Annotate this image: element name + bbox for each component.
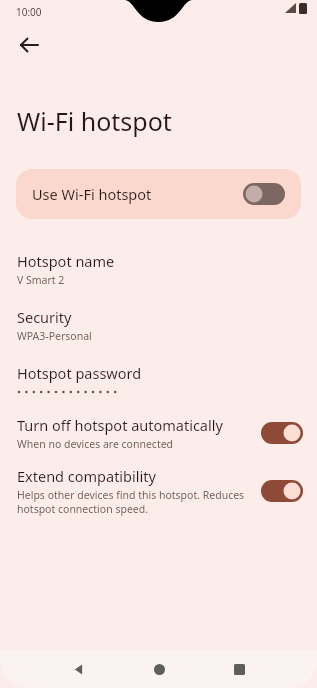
staticText: Use Wi-Fi hotspot: [32, 184, 152, 204]
button[interactable]: Hotspot password: [0, 363, 317, 398]
button[interactable]: Extend compatibility: [0, 466, 317, 516]
staticText: hotspot connection speed.: [17, 502, 148, 516]
staticText: Extend compatibility: [17, 466, 156, 486]
staticText: V Smart 2: [17, 273, 65, 287]
staticText: Hotspot password: [17, 363, 142, 383]
button[interactable]: Home: [119, 650, 199, 688]
button[interactable]: Back: [38, 650, 119, 688]
button[interactable]: Back: [8, 24, 50, 66]
button[interactable]: Hotspot name: [0, 251, 317, 287]
button[interactable]: Turn off hotspot automatically: [0, 415, 317, 451]
button[interactable]: Recents: [199, 650, 279, 688]
staticText: Helps other devices find this hotspot. R…: [17, 488, 245, 502]
button[interactable]: Use Wi-Fi hotspot: [16, 169, 301, 219]
staticText: Security: [17, 307, 72, 327]
staticText: Hotspot name: [17, 251, 115, 271]
staticText: Wi-Fi hotspot: [17, 104, 172, 138]
staticText: WPA3-Personal: [17, 329, 92, 343]
staticText: When no devices are connected: [17, 437, 174, 451]
staticText: 10:00: [16, 5, 42, 19]
button[interactable]: Security: [0, 307, 317, 343]
staticText: Turn off hotspot automatically: [17, 415, 223, 435]
